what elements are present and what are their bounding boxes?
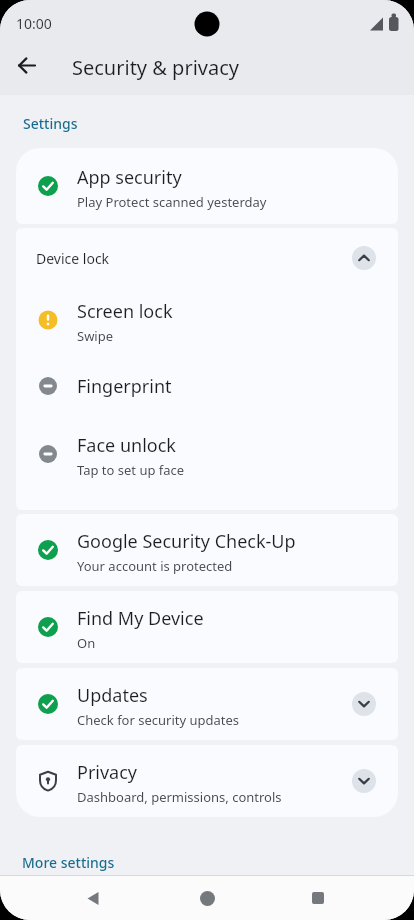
button[interactable]	[352, 692, 376, 716]
button[interactable]	[352, 769, 376, 793]
button[interactable]	[352, 246, 376, 270]
staticText: 10:00	[16, 14, 52, 33]
staticText: Check for security updates	[77, 711, 240, 729]
button[interactable]: Screen lock	[16, 288, 398, 352]
staticText: Updates	[77, 683, 148, 708]
staticText: Google Security Check-Up	[77, 529, 296, 554]
button[interactable]	[303, 883, 333, 913]
staticText: Screen lock	[77, 299, 173, 324]
staticText: Settings	[23, 114, 78, 133]
button[interactable]	[192, 883, 222, 913]
button[interactable]: More settings	[22, 853, 115, 872]
staticText: On	[77, 634, 96, 652]
staticText: Play Protect scanned yesterday	[77, 193, 267, 211]
button[interactable]: Fingerprint	[16, 352, 398, 420]
staticText: Privacy	[77, 760, 138, 785]
staticText: Tap to set up face	[77, 461, 185, 479]
staticText: Dashboard, permissions, controls	[77, 788, 282, 806]
button[interactable]: Find My Device	[16, 591, 398, 663]
staticText: Face unlock	[77, 433, 176, 458]
button[interactable]: Device lock	[16, 228, 398, 288]
button[interactable]: Updates	[16, 668, 398, 740]
button[interactable]: App security	[16, 148, 398, 224]
staticText: Fingerprint	[77, 374, 172, 399]
button[interactable]: Privacy	[16, 745, 398, 817]
button[interactable]	[78, 883, 108, 913]
staticText: App security	[77, 165, 182, 190]
button[interactable]	[11, 51, 43, 83]
staticText: Device lock	[36, 249, 352, 268]
button[interactable]: Face unlock	[16, 420, 398, 488]
staticText: Find My Device	[77, 606, 204, 631]
button[interactable]: Google Security Check-Up	[16, 514, 398, 586]
staticText: Your account is protected	[77, 557, 233, 575]
staticText: Security & privacy	[72, 54, 239, 81]
staticText: Swipe	[77, 327, 114, 345]
